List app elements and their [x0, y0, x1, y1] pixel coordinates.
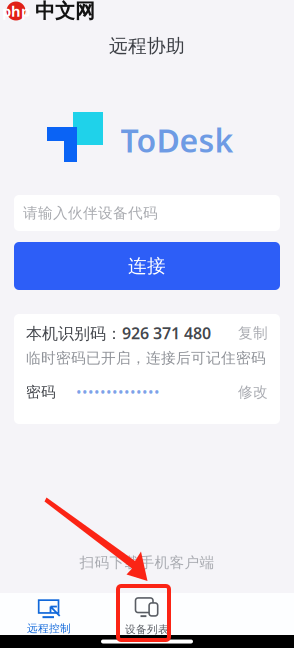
staticText: 扫码下载手机客户端 — [79, 553, 214, 571]
staticText: 中文网 — [35, 0, 95, 23]
button[interactable]: 远程控制 — [0, 593, 98, 635]
staticText: 设备列表 — [125, 623, 169, 636]
staticText: 临时密码已开启，连接后可记住密码 — [26, 349, 266, 367]
staticText: ToDesk — [120, 119, 233, 161]
staticText: 修改 — [238, 383, 268, 401]
staticText: 复制 — [238, 324, 268, 342]
staticText: 请输入伙伴设备代码 — [23, 204, 158, 222]
button[interactable]: 设备列表 — [98, 593, 196, 635]
staticText: 密码 — [26, 383, 56, 401]
staticText: 远程协助 — [109, 34, 185, 57]
staticText: 连接 — [128, 254, 166, 277]
button[interactable]: 连接 — [14, 242, 280, 290]
staticText: 本机识别码：926 371 480 — [26, 322, 211, 344]
button[interactable]: 请输入伙伴设备代码 — [14, 195, 280, 231]
staticText: php — [2, 1, 30, 21]
staticText: •••••••••••••• — [76, 382, 160, 402]
staticText: 远程控制 — [27, 622, 71, 635]
